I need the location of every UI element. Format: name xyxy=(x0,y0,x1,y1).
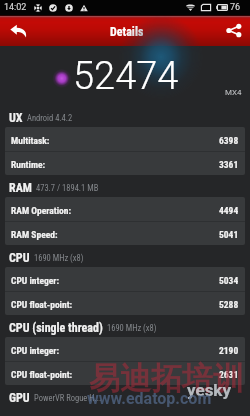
staticText: PowerVR Rogue H... xyxy=(34,393,102,403)
staticText: CPU xyxy=(9,251,30,265)
staticText: CPU float-point: xyxy=(11,369,73,380)
staticText: MX4 xyxy=(225,88,242,97)
button[interactable]: CPU float-point: xyxy=(5,362,245,385)
button[interactable]: Multitask: xyxy=(5,127,245,151)
staticText: 2190 xyxy=(219,345,239,356)
staticText: 76 xyxy=(230,2,241,13)
button[interactable]: Back xyxy=(0,15,36,46)
staticText: www.edatop.com xyxy=(87,389,212,408)
staticText: 5034 xyxy=(219,275,239,286)
staticText: Multitask: xyxy=(11,135,50,146)
staticText: 1690 MHz (x8) xyxy=(34,253,84,263)
staticText: CPU float-point: xyxy=(11,299,73,310)
button[interactable]: Runtime: xyxy=(5,152,245,175)
button[interactable]: Share xyxy=(216,15,250,46)
staticText: CPU (single thread) xyxy=(9,321,103,335)
staticText: 易迪拓培训 xyxy=(89,359,244,398)
button[interactable]: CPU float-point: xyxy=(5,292,245,315)
staticText: CPU integer: xyxy=(11,275,60,286)
staticText: Android 4.4.2 xyxy=(27,113,73,123)
staticText: UX xyxy=(9,111,23,125)
button[interactable]: CPU integer: xyxy=(5,267,245,291)
button[interactable]: CPU integer: xyxy=(5,337,245,361)
staticText: Runtime: xyxy=(11,159,46,170)
staticText: 14:02 xyxy=(4,2,27,13)
staticText: RAM xyxy=(9,181,32,195)
button[interactable]: RAM Speed: xyxy=(5,222,245,245)
staticText: 52474 xyxy=(73,54,179,99)
staticText: 4494 xyxy=(219,205,239,216)
staticText: yesky xyxy=(187,380,232,400)
staticText: RAM Speed: xyxy=(11,229,58,240)
staticText: 5041 xyxy=(219,229,239,240)
staticText: 6398 xyxy=(219,135,239,146)
staticText: 1690 MHz (x8) xyxy=(107,323,157,333)
staticText: 2631 xyxy=(219,369,239,380)
staticText: 5288 xyxy=(219,299,239,310)
staticText: Details xyxy=(110,25,144,39)
staticText: 3361 xyxy=(219,159,239,170)
staticText: GPU xyxy=(9,391,30,405)
staticText: 473.7 / 1894.1 MB xyxy=(36,183,99,193)
staticText: CPU integer: xyxy=(11,345,60,356)
button[interactable]: RAM Operation: xyxy=(5,197,245,221)
staticText: RAM Operation: xyxy=(11,205,72,216)
